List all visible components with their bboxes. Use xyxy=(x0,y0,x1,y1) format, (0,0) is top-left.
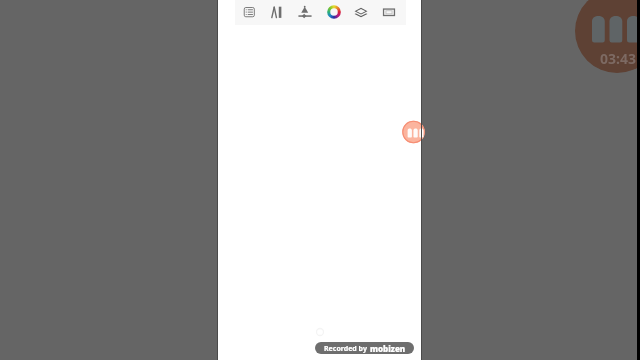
staticText: mobizen xyxy=(370,343,406,354)
button[interactable]: Shape tools xyxy=(266,1,288,23)
staticText: Recorded by xyxy=(324,344,367,354)
button[interactable]: Layers xyxy=(350,1,372,23)
button[interactable]: Brush size xyxy=(294,1,316,23)
button[interactable]: Color xyxy=(323,1,345,23)
button[interactable]: List xyxy=(238,1,260,23)
staticText: 03:43 xyxy=(600,49,636,68)
button[interactable]: Recorded by mobizen xyxy=(315,342,414,354)
button[interactable]: Canvas xyxy=(378,1,400,23)
